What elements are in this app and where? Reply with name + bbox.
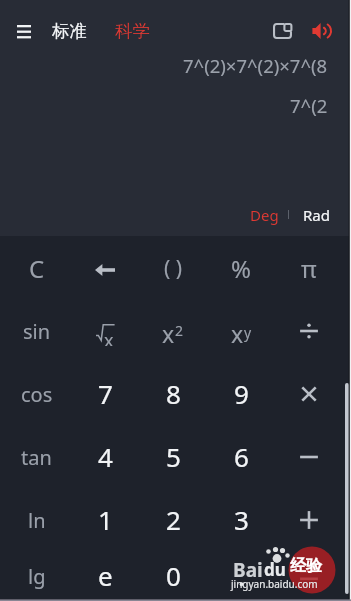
staticText: y: [244, 323, 252, 342]
button[interactable]: 科学: [109, 15, 156, 47]
button[interactable]: lg: [2, 553, 71, 601]
staticText: 0: [166, 558, 181, 593]
staticText: lg: [28, 563, 46, 590]
staticText: cos: [21, 381, 53, 408]
button[interactable]: 0: [139, 553, 207, 601]
button[interactable]: 标准: [46, 15, 93, 47]
other: Minus: [296, 444, 322, 470]
staticText: 8: [166, 376, 181, 411]
button[interactable]: 1: [71, 490, 139, 553]
staticText: du: [264, 558, 286, 581]
button[interactable]: Multi window: [261, 10, 303, 52]
staticText: e: [98, 558, 113, 593]
staticText: tan: [21, 444, 52, 471]
button[interactable]: Plus: [275, 490, 343, 553]
button[interactable]: x: [71, 301, 139, 364]
button[interactable]: ln: [2, 490, 71, 553]
button[interactable]: 9: [207, 364, 275, 427]
staticText: %: [231, 252, 251, 285]
button[interactable]: 3: [207, 490, 275, 553]
staticText: x: [162, 318, 175, 349]
staticText: Deg: [250, 205, 279, 225]
button[interactable]: Minus: [275, 427, 343, 490]
other: Divide: [296, 318, 322, 344]
button[interactable]: x: [139, 301, 207, 364]
button[interactable]: Backspace: [71, 238, 139, 301]
button[interactable]: e: [71, 553, 139, 601]
button[interactable]: Menu: [2, 10, 45, 53]
staticText: 5: [166, 439, 181, 474]
staticText: 7^(2)×7^(2)×7^(8: [183, 53, 328, 78]
button[interactable]: cos: [2, 364, 71, 427]
button[interactable]: x: [207, 301, 275, 364]
button[interactable]: 5: [139, 427, 207, 490]
button[interactable]: .: [207, 553, 275, 601]
button[interactable]: C: [2, 238, 71, 301]
staticText: 2: [175, 321, 184, 340]
staticText: 7^(2: [290, 93, 328, 118]
button[interactable]: tan: [2, 427, 71, 490]
staticText: 6: [234, 439, 249, 474]
staticText: 4: [98, 439, 113, 474]
other: Multiply: [296, 381, 322, 407]
staticText: x: [104, 328, 114, 346]
button[interactable]: 7: [71, 364, 139, 427]
staticText: Bai: [233, 557, 263, 583]
staticText: Rad: [303, 205, 330, 225]
button[interactable]: π: [275, 238, 343, 301]
staticText: 科学: [115, 20, 150, 42]
staticText: ( ): [164, 254, 183, 283]
button[interactable]: 8: [139, 364, 207, 427]
staticText: π: [301, 252, 317, 285]
other: Plus: [296, 507, 322, 533]
button[interactable]: Deg: [245, 201, 284, 229]
button[interactable]: ( ): [139, 238, 207, 301]
button[interactable]: 4: [71, 427, 139, 490]
staticText: 9: [234, 376, 249, 411]
button[interactable]: sin: [2, 301, 71, 364]
button[interactable]: Sound on: [300, 10, 342, 52]
button[interactable]: Multiply: [275, 364, 343, 427]
button[interactable]: Divide: [275, 301, 343, 364]
button[interactable]: 2: [139, 490, 207, 553]
staticText: x: [231, 318, 244, 349]
other: Backspace: [95, 264, 115, 276]
staticText: jingyan.baidu.com: [231, 577, 318, 591]
button[interactable]: %: [207, 238, 275, 301]
button[interactable]: 6: [207, 427, 275, 490]
other: Equals: [296, 562, 322, 588]
staticText: 3: [234, 502, 249, 537]
staticText: .: [238, 558, 245, 593]
button[interactable]: Equals: [275, 553, 343, 601]
staticText: 标准: [52, 20, 87, 42]
staticText: ln: [28, 507, 46, 534]
staticText: C: [29, 252, 45, 285]
staticText: 2: [166, 502, 181, 537]
staticText: sin: [23, 318, 51, 345]
staticText: 1: [98, 502, 113, 537]
staticText: 7: [98, 376, 113, 411]
staticText: 经验: [290, 556, 322, 576]
button[interactable]: Rad: [298, 201, 335, 229]
